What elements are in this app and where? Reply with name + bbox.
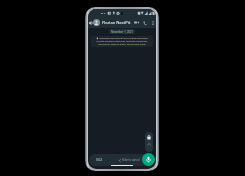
button[interactable]: November 1, 2021 — [109, 29, 135, 34]
button[interactable]: Voice call — [141, 18, 148, 27]
button[interactable]: Record voice message — [142, 153, 155, 166]
button[interactable]: Back — [88, 18, 93, 27]
button[interactable]: Lock recording — [145, 132, 153, 152]
button[interactable]: 0:02 — [89, 154, 154, 166]
staticText: November 1, 2021 — [111, 30, 133, 33]
button[interactable]: Video call — [133, 18, 140, 27]
staticText: Florian NextPit — [102, 20, 131, 25]
staticText: 0:02 — [96, 158, 103, 162]
staticText: Slide to cancel — [122, 158, 140, 162]
button[interactable]: 🔒 Messages and calls are end-to-end encr… — [91, 36, 153, 47]
button[interactable]: Florian NextPit — [93, 17, 131, 28]
staticText: 🔒 Messages and calls are end-to-end encr… — [96, 37, 148, 46]
button[interactable]: More options — [150, 18, 156, 27]
